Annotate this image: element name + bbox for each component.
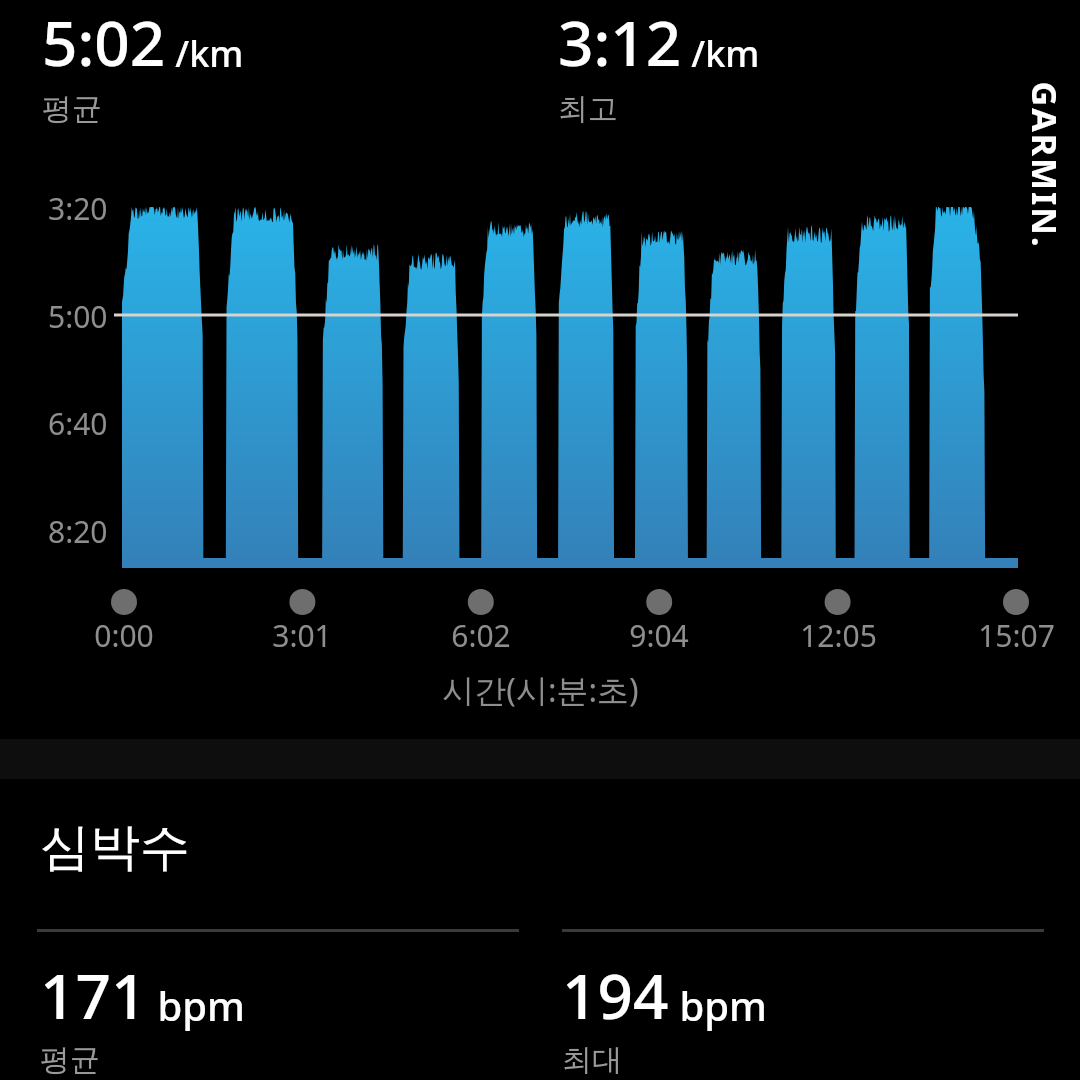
staticText: /km bbox=[682, 29, 760, 78]
staticText: 171 bbox=[40, 953, 147, 1037]
staticText: 6:40 bbox=[48, 403, 108, 444]
staticText: 5:02 bbox=[42, 0, 166, 84]
staticText: 3:01 bbox=[272, 615, 332, 656]
button[interactable]: Garmin bbox=[952, 70, 1080, 260]
staticText: 194 bbox=[562, 953, 669, 1037]
staticText: 평균 bbox=[42, 90, 102, 128]
staticText: /km bbox=[166, 29, 244, 78]
staticText: 심박수 bbox=[40, 816, 190, 879]
staticText: 0:00 bbox=[94, 615, 154, 656]
staticText: bpm bbox=[147, 978, 245, 1032]
staticText: 최고 bbox=[558, 90, 618, 128]
button[interactable]: 5:02 bbox=[42, 0, 522, 122]
staticText: 12:05 bbox=[800, 615, 877, 656]
staticText: 9:04 bbox=[629, 615, 689, 656]
staticText: bpm bbox=[669, 978, 767, 1032]
staticText: 3:12 bbox=[558, 0, 682, 84]
staticText: 5:00 bbox=[48, 296, 108, 337]
staticText: 15:07 bbox=[978, 615, 1055, 656]
button[interactable]: Pace chart bbox=[0, 150, 1080, 720]
button[interactable]: 194 bbox=[562, 953, 1032, 1075]
staticText: 평균 bbox=[40, 1041, 100, 1079]
button[interactable]: 3:12 bbox=[558, 0, 1038, 122]
staticText: GARMIN. bbox=[1021, 81, 1067, 248]
staticText: 최대 bbox=[562, 1041, 622, 1079]
staticText: 3:20 bbox=[48, 188, 108, 229]
staticText: 8:20 bbox=[48, 511, 108, 552]
button[interactable]: 171 bbox=[40, 953, 510, 1075]
staticText: 6:02 bbox=[451, 615, 511, 656]
staticText: 시간(시:분:초) bbox=[442, 668, 639, 712]
